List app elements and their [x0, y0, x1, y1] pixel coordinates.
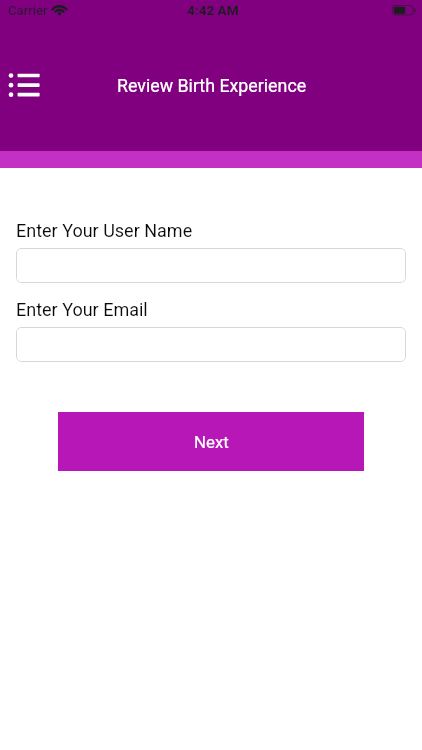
staticText: Enter Your Email [16, 299, 148, 320]
staticText: Carrier [8, 3, 48, 18]
button[interactable] [16, 248, 406, 283]
staticText: Enter Your User Name [16, 220, 193, 241]
button[interactable]: Next [58, 412, 364, 471]
button[interactable]: Menu [6, 67, 44, 99]
staticText: Review Birth Experience [117, 75, 307, 96]
staticText: 4:42 AM [187, 2, 239, 18]
button[interactable] [16, 327, 406, 362]
staticText: Next [194, 432, 229, 452]
